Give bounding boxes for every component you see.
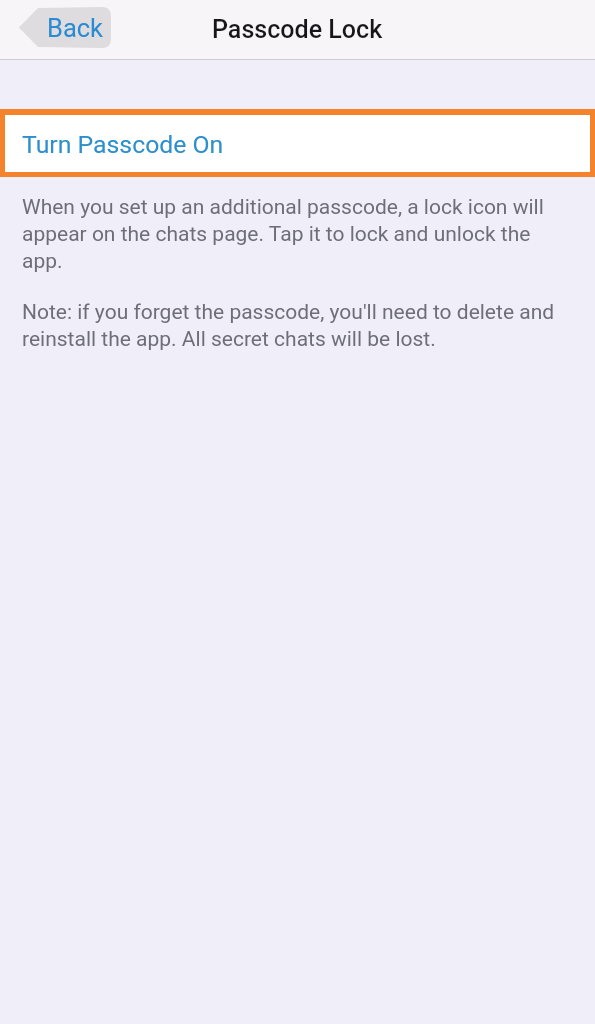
button[interactable]: Turn Passcode On <box>5 115 590 172</box>
staticText: Turn Passcode On <box>22 130 224 159</box>
staticText: Passcode Lock <box>212 15 383 44</box>
staticText: When you set up an additional passcode, … <box>22 193 544 274</box>
button[interactable]: Back <box>17 7 111 48</box>
staticText: Back <box>47 13 104 43</box>
staticText: Note: if you forget the passcode, you'll… <box>22 298 555 352</box>
